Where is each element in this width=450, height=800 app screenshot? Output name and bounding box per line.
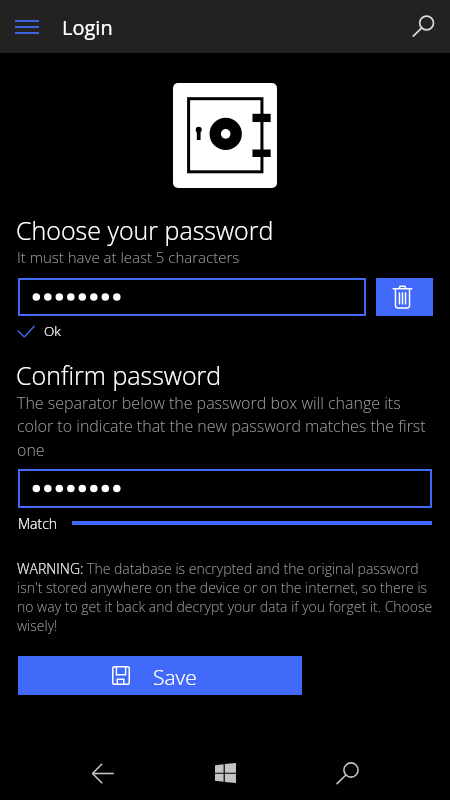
staticText: WARNING: The database is encrypted and t… <box>17 559 434 635</box>
button[interactable]: Home <box>202 752 248 794</box>
button[interactable]: Search <box>328 752 374 794</box>
staticText: Match <box>18 514 58 533</box>
button[interactable]: Ok <box>14 320 74 344</box>
button[interactable]: Search <box>405 2 449 46</box>
staticText: Save <box>153 663 197 692</box>
button[interactable]: Clear password <box>376 278 433 316</box>
staticText: The separator below the password box wil… <box>17 392 434 461</box>
staticText: Choose your password <box>16 213 274 247</box>
button[interactable]: Menu <box>3 6 51 46</box>
button[interactable]: Password <box>18 278 366 316</box>
button[interactable]: Confirm password <box>18 469 432 508</box>
button[interactable]: Back <box>80 752 126 794</box>
staticText: Ok <box>44 322 61 340</box>
staticText: Confirm password <box>16 358 222 392</box>
staticText: It must have at least 5 characters <box>17 247 240 267</box>
staticText: Login <box>62 14 113 41</box>
button[interactable]: Save <box>18 656 302 695</box>
